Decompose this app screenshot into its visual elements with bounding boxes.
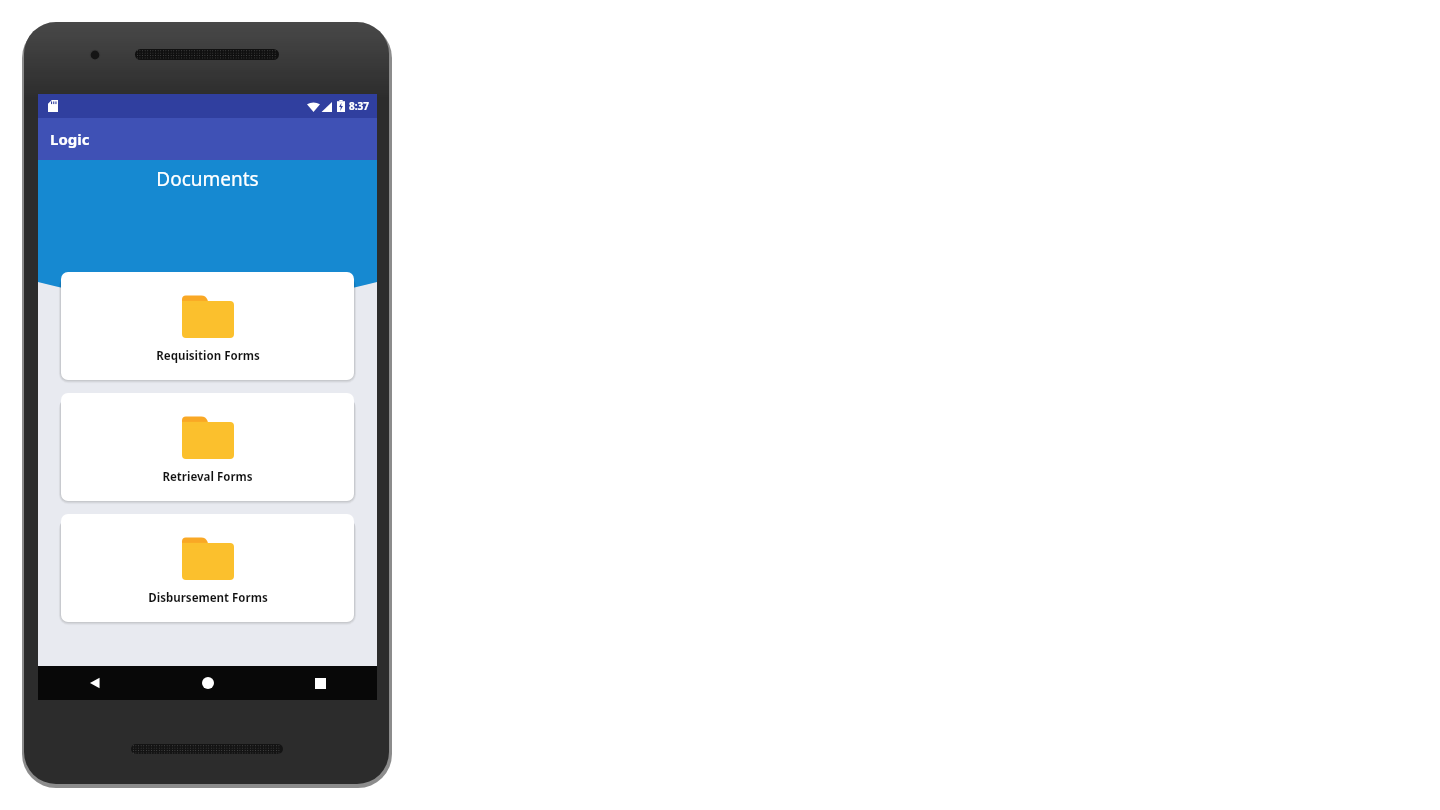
button[interactable]: Back (38, 666, 151, 700)
staticText: Logic (50, 129, 90, 149)
staticText: Retrieval Forms (162, 469, 253, 485)
button[interactable]: Disbursement Forms (61, 514, 354, 622)
staticText: Documents (156, 166, 259, 192)
staticText: 8:37 (349, 99, 369, 113)
button[interactable]: Requisition Forms (61, 272, 354, 380)
staticText: Disbursement Forms (148, 590, 268, 606)
staticText: Requisition Forms (156, 348, 260, 364)
button[interactable]: Retrieval Forms (61, 393, 354, 501)
button[interactable]: Recent apps (264, 666, 377, 700)
button[interactable]: Home (151, 666, 264, 700)
